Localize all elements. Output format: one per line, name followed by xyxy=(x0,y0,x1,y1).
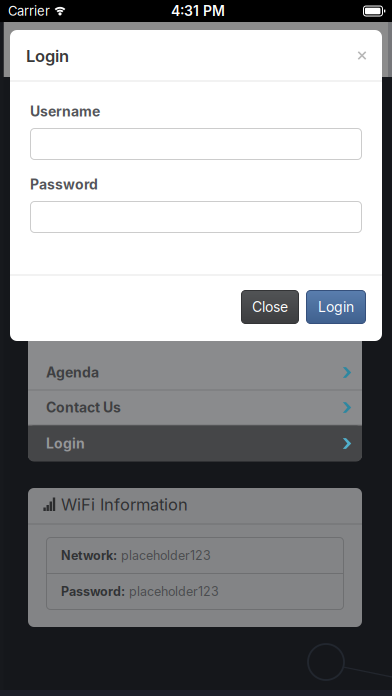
staticText: Password: xyxy=(61,584,125,599)
staticText: Network: xyxy=(61,548,117,563)
staticText: placeholder123 xyxy=(121,548,211,563)
staticText: Username xyxy=(30,103,100,120)
button[interactable]: Login xyxy=(306,290,366,324)
button[interactable]: Username xyxy=(30,128,362,160)
staticText: Login xyxy=(26,46,69,66)
staticText: Carrier xyxy=(8,3,50,19)
staticText: Close xyxy=(252,298,288,315)
staticText: Login xyxy=(318,298,354,315)
staticText: placeholder123 xyxy=(129,584,219,599)
staticText: Password xyxy=(30,176,98,193)
button[interactable]: Password xyxy=(30,201,362,233)
button[interactable]: Login xyxy=(28,425,362,461)
staticText: WiFi Information xyxy=(61,494,188,514)
button[interactable]: Agenda xyxy=(28,355,362,390)
button[interactable]: Contact Us xyxy=(28,390,362,425)
staticText: Agenda xyxy=(46,364,99,381)
button[interactable]: Close xyxy=(241,290,299,324)
button[interactable]: Close xyxy=(347,40,377,70)
staticText: 4:31 PM xyxy=(171,2,225,19)
staticText: Login xyxy=(46,435,85,452)
staticText: Contact Us xyxy=(46,399,121,416)
